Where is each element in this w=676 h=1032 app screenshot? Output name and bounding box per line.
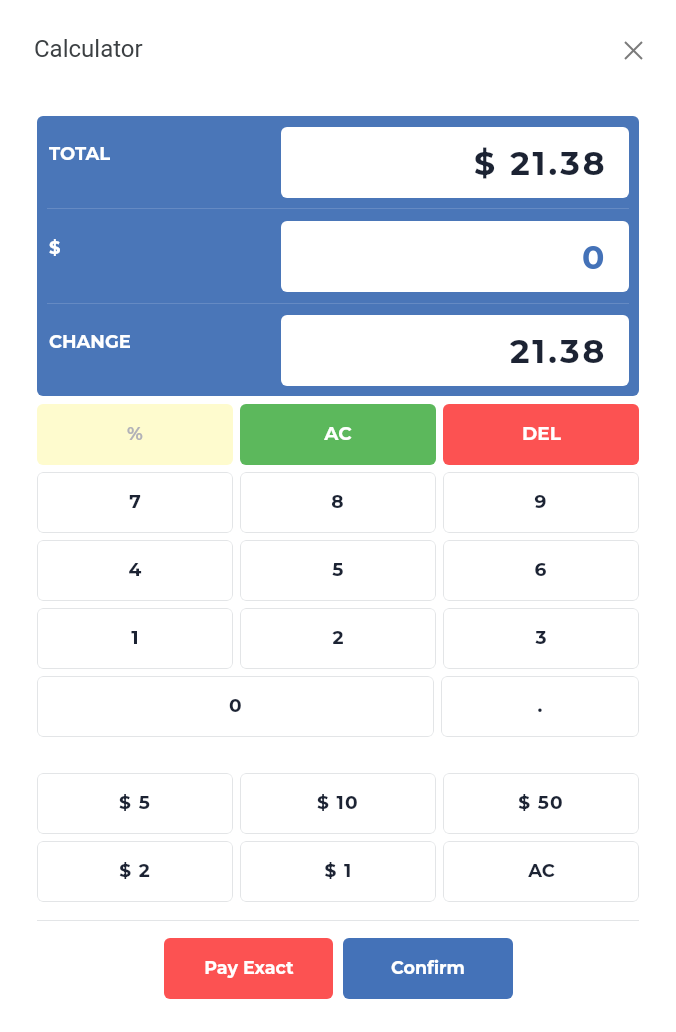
button[interactable]: 0	[37, 676, 434, 737]
staticText: DEL	[522, 422, 561, 445]
staticText: 3	[535, 626, 548, 649]
staticText: Calculator	[34, 35, 143, 63]
staticText: Confirm	[391, 957, 465, 978]
button[interactable]: DEL	[443, 404, 639, 465]
button[interactable]: 7	[37, 472, 233, 533]
staticText: 9	[534, 490, 548, 513]
button[interactable]: 3	[443, 608, 639, 669]
button[interactable]: $ 50	[443, 773, 639, 834]
staticText: $ 5	[119, 791, 151, 814]
button[interactable]: Confirm	[343, 938, 513, 999]
staticText: 6	[534, 558, 548, 581]
staticText: Pay Exact	[204, 957, 294, 978]
staticText: %	[127, 423, 143, 445]
staticText: $ 2	[119, 859, 151, 882]
staticText: TOTAL	[49, 143, 111, 165]
staticText: 1	[131, 626, 140, 649]
button[interactable]: 6	[443, 540, 639, 601]
button[interactable]: $ 2	[37, 841, 233, 902]
button[interactable]: $ 10	[240, 773, 436, 834]
staticText: $ 21.38	[474, 143, 608, 183]
staticText: 2	[332, 626, 345, 649]
button[interactable]: Pay Exact	[164, 938, 333, 999]
staticText: 0	[582, 237, 608, 277]
button[interactable]: Close	[609, 26, 657, 74]
button[interactable]: $ 1	[240, 841, 436, 902]
staticText: $ 50	[518, 791, 564, 814]
button[interactable]: .	[441, 676, 639, 737]
staticText: 8	[331, 490, 345, 513]
button[interactable]: AC	[240, 404, 436, 465]
staticText: $ 10	[317, 791, 359, 814]
button[interactable]: 1	[37, 608, 233, 669]
staticText: .	[537, 694, 544, 717]
button[interactable]: 4	[37, 540, 233, 601]
staticText: AC	[528, 860, 555, 882]
button[interactable]: 5	[240, 540, 436, 601]
staticText: $ 1	[324, 859, 353, 882]
button[interactable]: AC	[443, 841, 639, 902]
staticText: 4	[128, 558, 143, 581]
button[interactable]: $ 5	[37, 773, 233, 834]
button[interactable]: 2	[240, 608, 436, 669]
button[interactable]: 9	[443, 472, 639, 533]
staticText: AC	[324, 422, 352, 445]
button[interactable]: 8	[240, 472, 436, 533]
staticText: 0	[229, 694, 243, 717]
staticText: 7	[129, 490, 142, 513]
staticText: 5	[332, 558, 345, 581]
staticText: 21.38	[510, 331, 608, 371]
button[interactable]: %	[37, 404, 233, 465]
staticText: $	[49, 237, 61, 259]
staticText: CHANGE	[49, 331, 131, 353]
